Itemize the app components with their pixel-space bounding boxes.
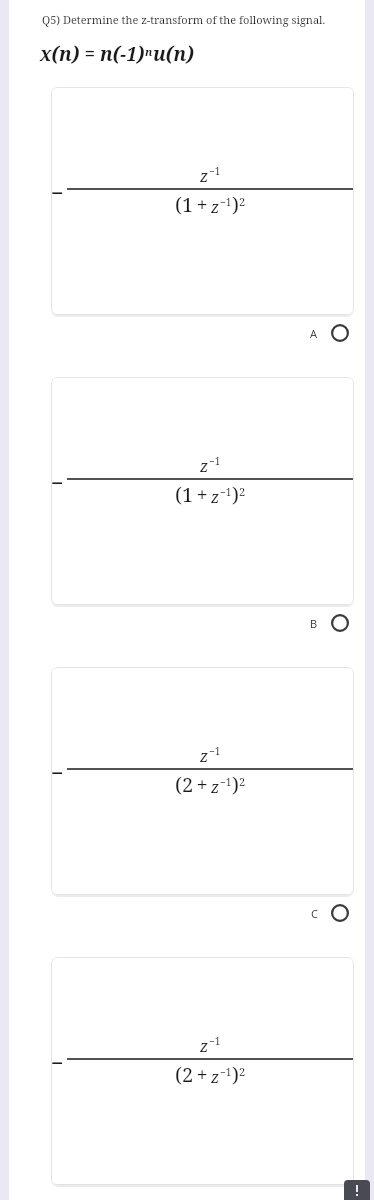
staticText: Q5) Determine the z-transform of the fol…	[42, 12, 326, 27]
staticText: )	[232, 771, 239, 798]
staticText: z	[200, 455, 209, 477]
staticText: )	[232, 1061, 239, 1088]
button[interactable]: A	[51, 315, 354, 351]
staticText: −1	[220, 485, 232, 499]
staticText: −1	[209, 454, 221, 468]
staticText: −	[51, 177, 64, 207]
staticText: −	[51, 467, 64, 497]
staticText: )	[232, 481, 239, 508]
staticText: z	[211, 196, 220, 218]
staticText: B	[310, 616, 318, 631]
staticText: z	[211, 486, 220, 508]
staticText: 2	[239, 194, 246, 209]
staticText: −1	[209, 1034, 221, 1048]
staticText: 2	[239, 1064, 246, 1079]
button[interactable]: −	[51, 377, 354, 605]
staticText: −1	[209, 164, 221, 178]
staticText: x(n) = n(−1)	[40, 41, 145, 67]
other: Select option B	[330, 613, 350, 633]
button[interactable]: More options	[344, 1180, 370, 1200]
staticText: z	[211, 776, 220, 798]
staticText: (2 +	[175, 771, 211, 798]
staticText: (1 +	[175, 481, 211, 508]
staticText: C	[311, 906, 318, 921]
staticText: −1	[209, 744, 221, 758]
staticText: −1	[220, 195, 232, 209]
staticText: (1 +	[175, 191, 211, 218]
staticText: −	[51, 757, 64, 787]
other: Select option C	[330, 903, 350, 923]
button[interactable]: −	[51, 87, 354, 315]
staticText: 2	[239, 484, 246, 499]
staticText: z	[200, 165, 209, 187]
staticText: 2	[239, 774, 246, 789]
button[interactable]: −	[51, 667, 354, 895]
staticText: −1	[220, 775, 232, 789]
staticText: )	[232, 191, 239, 218]
button[interactable]: B	[51, 605, 354, 641]
button[interactable]: C	[51, 895, 354, 931]
button[interactable]: −	[51, 957, 354, 1185]
staticText: z	[200, 745, 209, 767]
staticText: −1	[220, 1065, 232, 1079]
staticText: z	[200, 1035, 209, 1057]
other: Select option A	[330, 323, 350, 343]
staticText: u(n)	[153, 41, 194, 67]
staticText: z	[211, 1066, 220, 1088]
staticText: n	[145, 44, 153, 59]
staticText: A	[310, 326, 318, 341]
staticText: −	[51, 1047, 64, 1077]
staticText: (2 +	[175, 1061, 211, 1088]
